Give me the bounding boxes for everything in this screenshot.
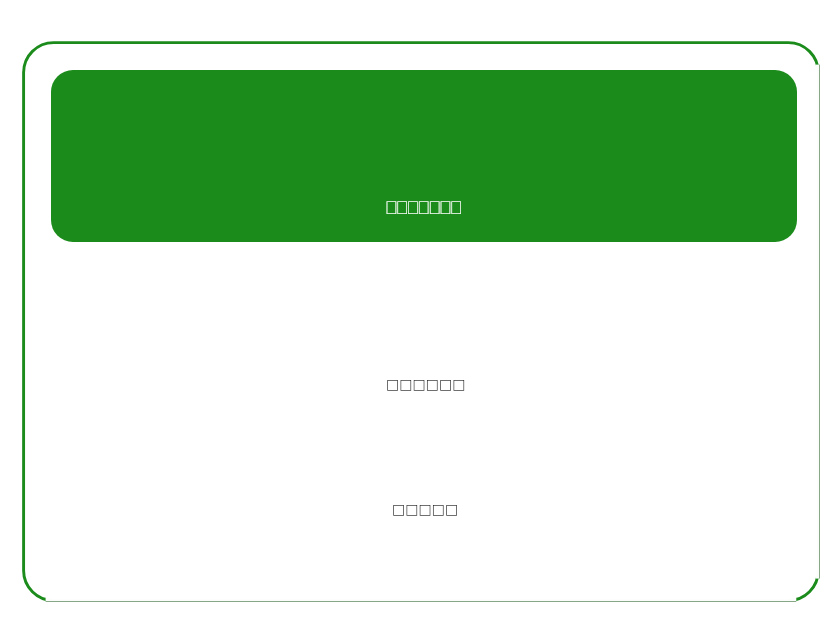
button[interactable]: □□□□□ (52, 442, 798, 567)
staticText: □□□□□□ (386, 376, 466, 392)
staticText: □□□□□ (392, 501, 459, 517)
button[interactable]: ⎕⎕⎕⎕⎕⎕⎕ (51, 70, 797, 242)
button[interactable]: □□□□□□ (52, 317, 798, 442)
staticText: ⎕⎕⎕⎕⎕⎕⎕ (51, 200, 797, 218)
